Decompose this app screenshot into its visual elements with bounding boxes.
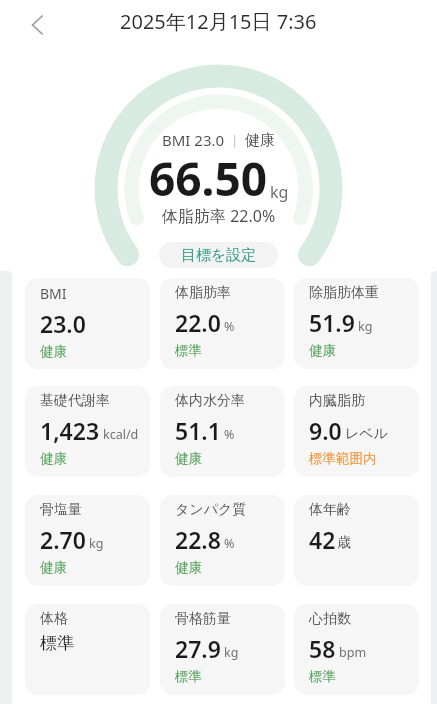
staticText: 22.0 <box>175 307 221 338</box>
staticText: 心拍数 <box>309 610 351 628</box>
button[interactable]: 体脂肪率 <box>160 278 285 369</box>
staticText: 骨塩量 <box>40 501 82 519</box>
staticText: 51.9 <box>309 307 355 338</box>
staticText: 66.50 <box>149 147 268 210</box>
staticText: 標準 <box>40 633 74 654</box>
staticText: BMI 23.0 <box>162 130 225 150</box>
staticText: 標準 <box>175 668 202 685</box>
staticText: 58 <box>309 633 336 664</box>
staticText: 9.0 <box>309 415 342 446</box>
button[interactable]: BMI <box>25 278 150 369</box>
staticText: 体年齢 <box>309 501 351 519</box>
staticText: % <box>224 535 235 552</box>
staticText: 健康 <box>40 343 67 360</box>
staticText: レベル <box>345 425 388 443</box>
staticText: 22.8 <box>175 524 221 555</box>
staticText: 健康 <box>175 450 202 467</box>
staticText: 23.0 <box>40 308 86 339</box>
staticText: 目標を設定 <box>181 246 257 265</box>
staticText: 体格 <box>40 610 68 628</box>
staticText: 健康 <box>40 559 67 576</box>
staticText: kg <box>270 181 289 203</box>
staticText: 体内水分率 <box>175 392 245 410</box>
button[interactable]: 目標を設定 <box>159 242 278 268</box>
staticText: 1,423 <box>40 415 100 446</box>
button[interactable]: 除脂肪体重 <box>294 278 419 369</box>
staticText: 健康 <box>309 342 336 359</box>
staticText: BMI <box>40 284 67 303</box>
staticText: 健康 <box>245 131 275 150</box>
staticText: 体脂肪率 <box>175 284 231 302</box>
staticText: % <box>224 426 235 443</box>
staticText: 27.9 <box>175 633 221 664</box>
button[interactable]: 基礎代謝率 <box>25 386 150 477</box>
staticText: 2025年12月15日 7:36 <box>120 8 317 35</box>
staticText: 51.1 <box>175 415 221 446</box>
button[interactable]: 心拍数 <box>294 604 419 695</box>
staticText: 42 <box>309 524 336 555</box>
staticText: kg <box>224 644 239 661</box>
button[interactable]: 体内水分率 <box>160 386 285 477</box>
staticText: 2.70 <box>40 524 86 555</box>
button[interactable]: 骨塩量 <box>25 495 150 586</box>
staticText: 健康 <box>175 559 202 576</box>
staticText: kg <box>89 535 104 552</box>
button[interactable]: 骨格筋量 <box>160 604 285 695</box>
button[interactable]: タンパク質 <box>160 495 285 586</box>
staticText: 健康 <box>40 450 67 467</box>
button[interactable]: 内臓脂肪 <box>294 386 419 477</box>
staticText: 内臓脂肪 <box>309 392 365 410</box>
button[interactable]: 体年齢 <box>294 495 419 586</box>
staticText: タンパク質 <box>175 501 247 519</box>
staticText: 除脂肪体重 <box>309 284 379 302</box>
staticText: | <box>231 131 239 149</box>
staticText: kcal/d <box>103 426 139 443</box>
staticText: 標準 <box>309 668 336 685</box>
staticText: 体脂肪率 22.0% <box>162 205 276 227</box>
staticText: 基礎代謝率 <box>40 392 110 410</box>
staticText: 標準範囲内 <box>309 450 377 467</box>
button[interactable] <box>20 10 56 40</box>
staticText: kg <box>358 318 373 335</box>
staticText: % <box>224 318 235 335</box>
button[interactable]: 体格 <box>25 604 150 695</box>
staticText: 骨格筋量 <box>175 610 231 628</box>
staticText: 歳 <box>337 534 351 552</box>
staticText: bpm <box>339 644 367 661</box>
staticText: 標準 <box>175 342 202 359</box>
